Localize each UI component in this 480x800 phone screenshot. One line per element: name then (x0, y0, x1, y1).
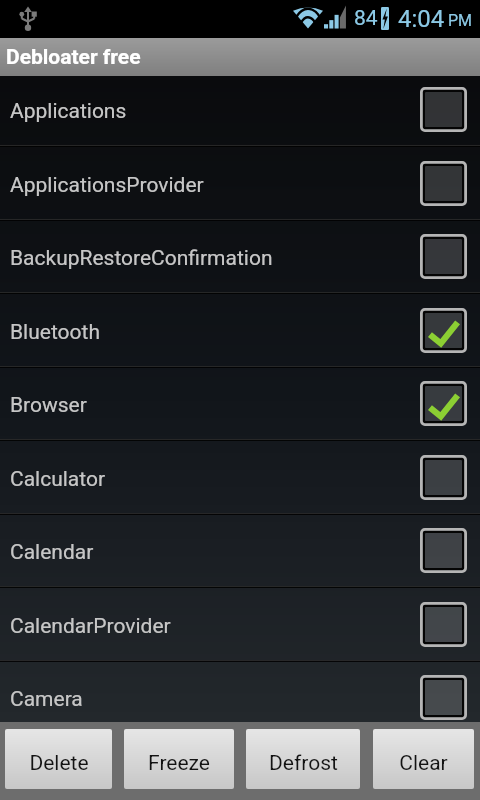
staticText: Calculator (10, 467, 106, 492)
button[interactable]: Freeze (124, 729, 234, 789)
staticText: Defrost (269, 751, 338, 776)
staticText: 4:04 (398, 5, 445, 33)
other: Selected (420, 381, 467, 426)
staticText: Calendar (10, 540, 94, 565)
other: Not selected (420, 161, 467, 206)
other: Not selected (420, 602, 467, 647)
button[interactable]: BackupRestoreConfirmation (0, 220, 480, 293)
staticText: Browser (10, 393, 87, 418)
staticText: Bluetooth (10, 320, 100, 345)
staticText: Freeze (148, 751, 210, 776)
other: USB connected (20, 6, 36, 31)
button[interactable]: Camera (0, 661, 480, 734)
staticText: Camera (10, 687, 83, 712)
button[interactable]: ApplicationsProvider (0, 147, 480, 220)
button[interactable]: Clear (373, 729, 474, 789)
button[interactable]: CalendarProvider (0, 588, 480, 661)
other: Not selected (420, 87, 467, 132)
staticText: ApplicationsProvider (10, 173, 204, 198)
staticText: BackupRestoreConfirmation (10, 246, 273, 271)
other: Not selected (420, 455, 467, 500)
other: Not selected (420, 528, 467, 573)
staticText: Debloater free (6, 45, 141, 70)
other: Selected (420, 308, 467, 353)
button[interactable]: Bluetooth (0, 294, 480, 367)
staticText: PM (448, 11, 473, 30)
button[interactable]: Calendar (0, 514, 480, 587)
button[interactable]: Calculator (0, 441, 480, 514)
other: Not selected (420, 675, 467, 720)
staticText: Clear (399, 751, 448, 776)
button[interactable]: Applications (0, 73, 480, 146)
button[interactable]: Browser (0, 367, 480, 440)
staticText: Applications (10, 99, 127, 124)
staticText: Delete (29, 751, 89, 776)
other: Not selected (420, 234, 467, 279)
staticText: 84 (354, 6, 378, 31)
staticText: CalendarProvider (10, 614, 171, 639)
button[interactable]: Delete (5, 729, 112, 789)
button[interactable]: Defrost (246, 729, 360, 789)
